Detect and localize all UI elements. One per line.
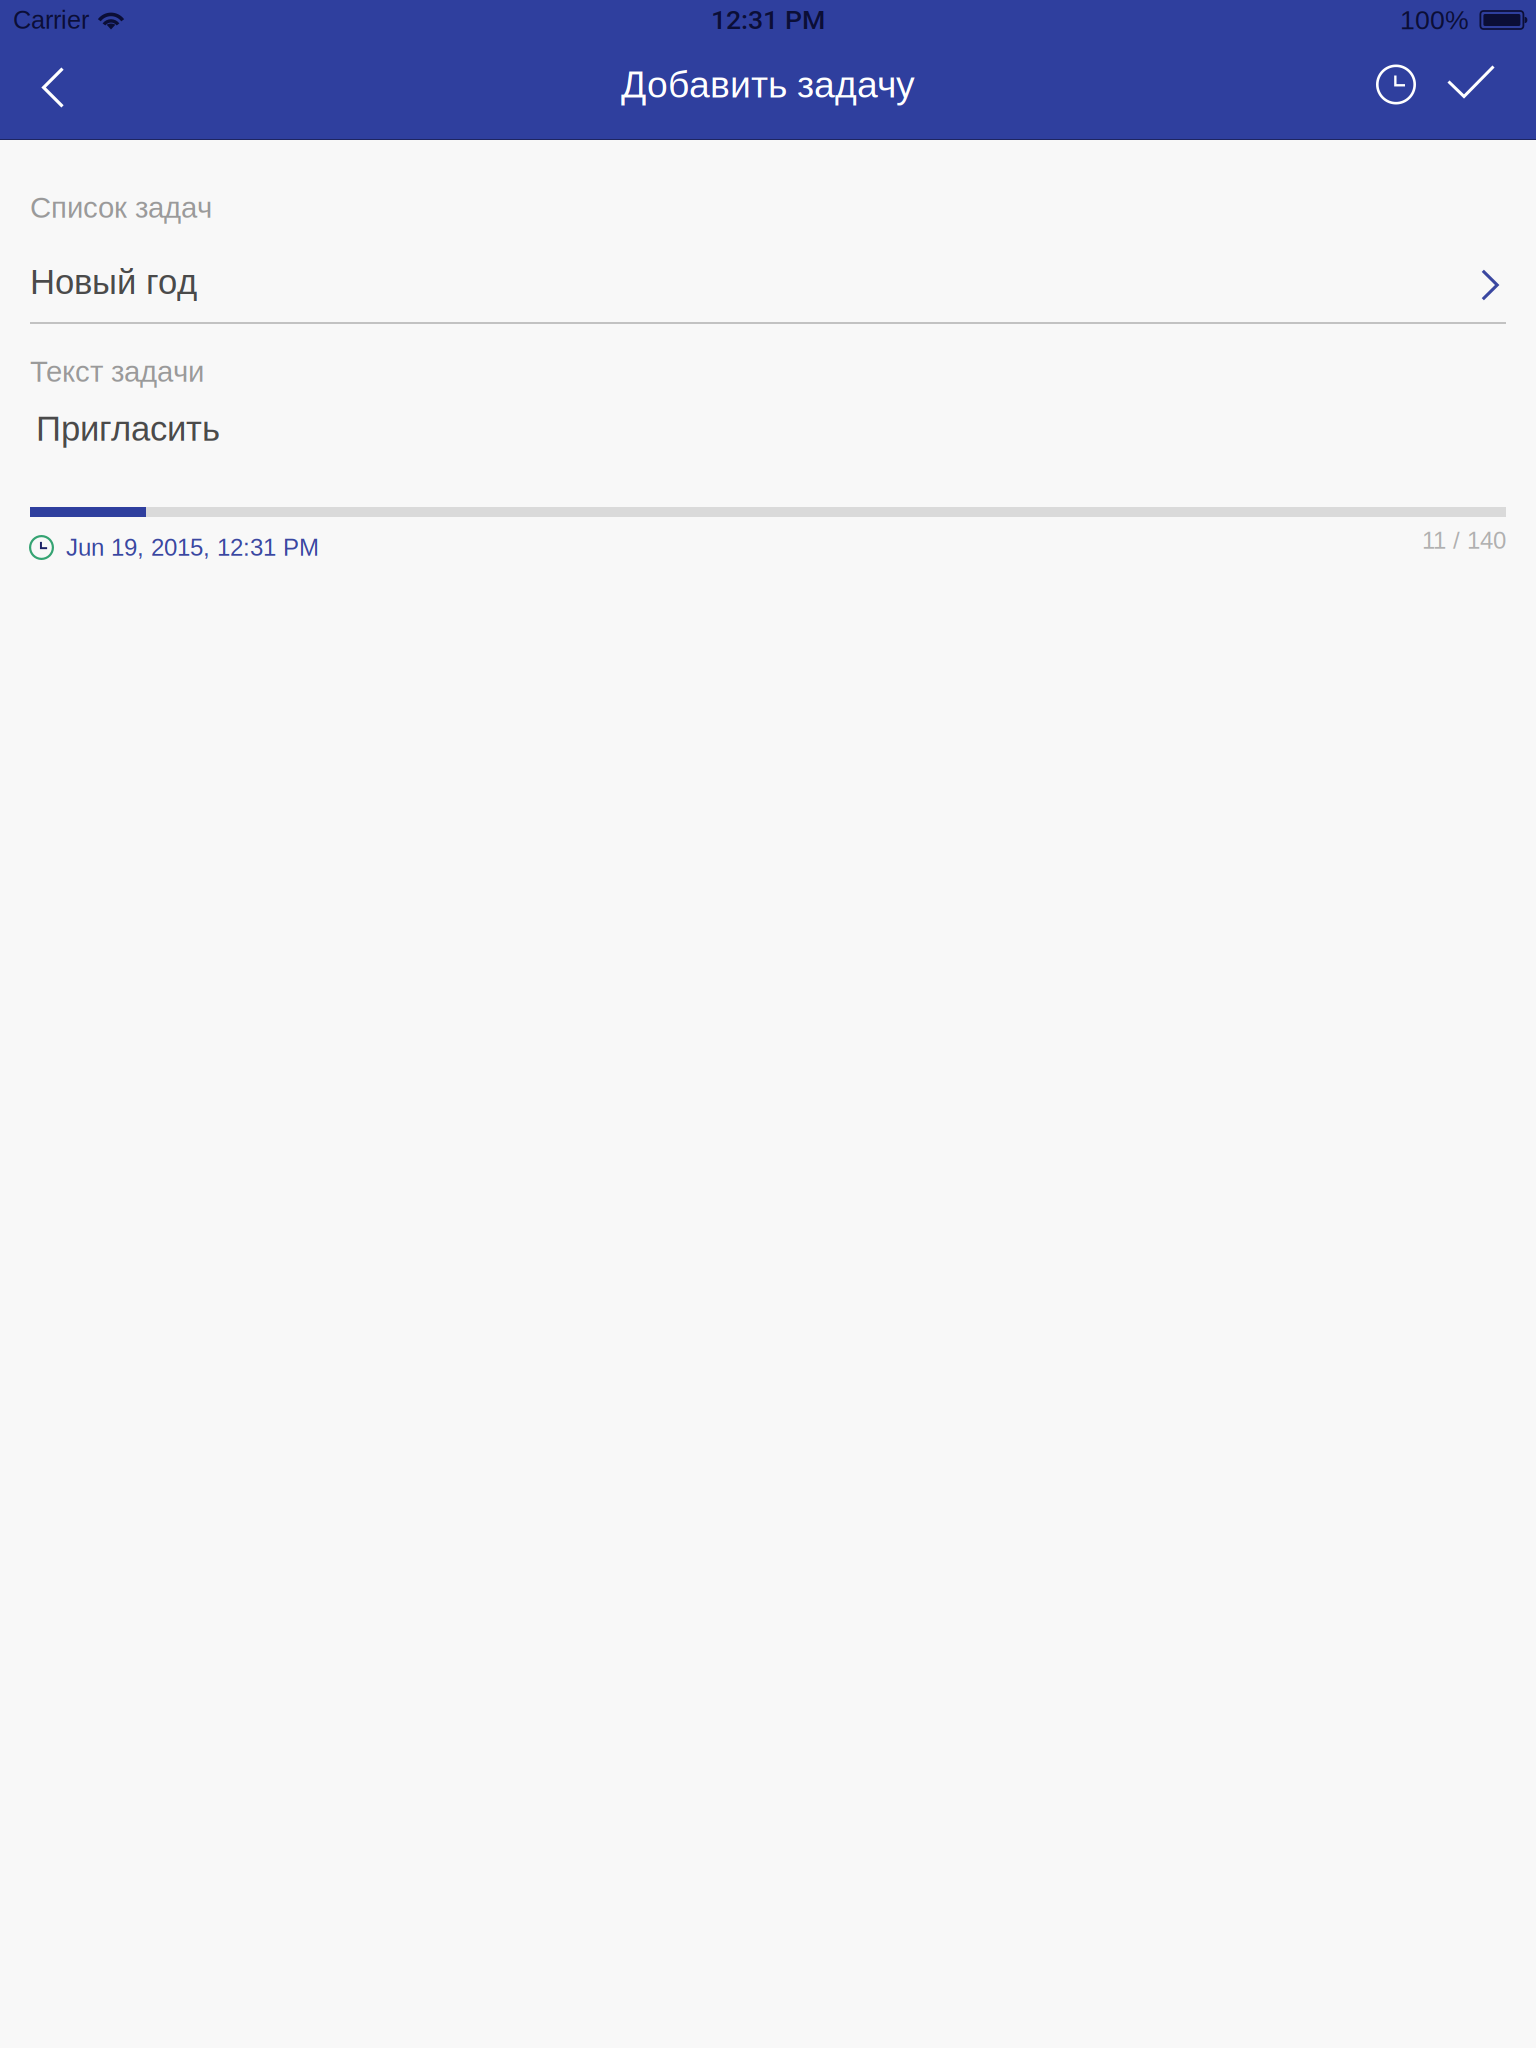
- button[interactable]: Set reminder: [1372, 40, 1448, 138]
- button[interactable]: Новый год: [0, 254, 1536, 310]
- staticText: Новый год: [30, 263, 197, 301]
- staticText: 11 / 140: [1422, 527, 1506, 554]
- button[interactable]: Back: [0, 40, 88, 138]
- staticText: Carrier: [13, 6, 89, 34]
- staticText: Добавить задачу: [621, 64, 915, 105]
- button[interactable]: Пригласить: [0, 412, 1536, 448]
- button[interactable]: Save task: [1448, 40, 1536, 138]
- staticText: 12:31 PM: [711, 4, 825, 36]
- staticText: Текст задачи: [30, 355, 204, 388]
- staticText: 100%: [1400, 5, 1469, 35]
- staticText: Список задач: [30, 191, 212, 224]
- button[interactable]: Jun 19, 2015, 12:31 PM: [29, 535, 319, 560]
- staticText: Пригласить: [36, 409, 220, 448]
- staticText: Jun 19, 2015, 12:31 PM: [66, 534, 319, 561]
